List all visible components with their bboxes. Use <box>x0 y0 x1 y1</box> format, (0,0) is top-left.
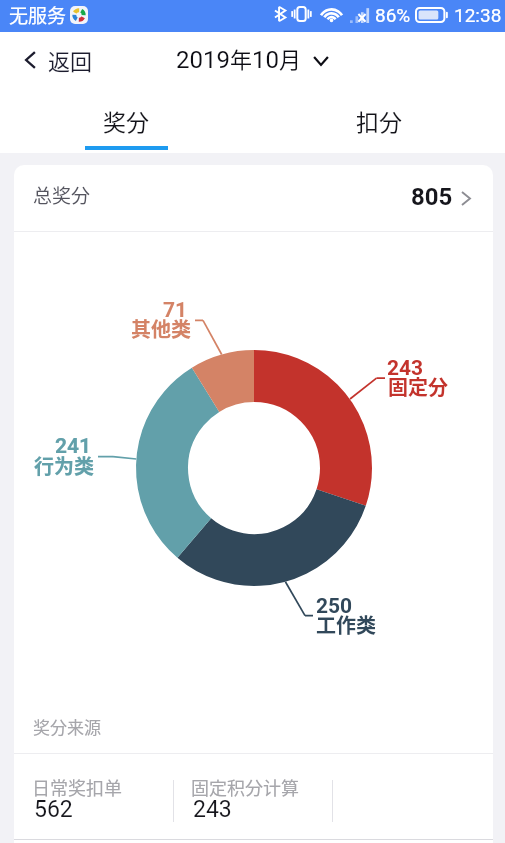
staticText: 241 <box>55 434 92 459</box>
staticText: 无服务 <box>9 1 67 29</box>
staticText: 其他类 <box>131 314 191 343</box>
staticText: 2019年10月 <box>176 42 301 74</box>
staticText: 总奖分 <box>33 181 91 209</box>
staticText: 固定积分计算 <box>191 774 299 800</box>
staticText: 12:38 <box>454 4 502 26</box>
staticText: 86% <box>375 4 411 26</box>
staticText: 奖分 <box>103 104 149 137</box>
staticText: 扣分 <box>356 104 402 137</box>
staticText: 562 <box>34 796 73 823</box>
staticText: 日常奖扣单 <box>32 774 122 800</box>
staticText: 工作类 <box>316 610 376 639</box>
button[interactable]: 总奖分 <box>14 165 493 231</box>
staticText: 250 <box>316 594 353 619</box>
staticText: 奖分来源 <box>33 714 101 739</box>
staticText: 243 <box>193 796 232 823</box>
button[interactable]: 奖分 <box>0 87 252 153</box>
staticText: 243 <box>387 356 424 381</box>
button[interactable]: 固定积分计算 <box>173 754 332 843</box>
staticText: 805 <box>411 183 453 211</box>
staticText: 71 <box>163 298 188 323</box>
button[interactable]: 日常奖扣单 <box>14 754 173 843</box>
staticText: 行为类 <box>34 451 94 480</box>
button[interactable]: 返回 <box>14 32 107 87</box>
button[interactable]: 2019年10月 <box>170 32 336 87</box>
button[interactable]: 扣分 <box>252 87 505 153</box>
staticText: 返回 <box>48 44 93 76</box>
staticText: 固定分 <box>388 372 448 401</box>
